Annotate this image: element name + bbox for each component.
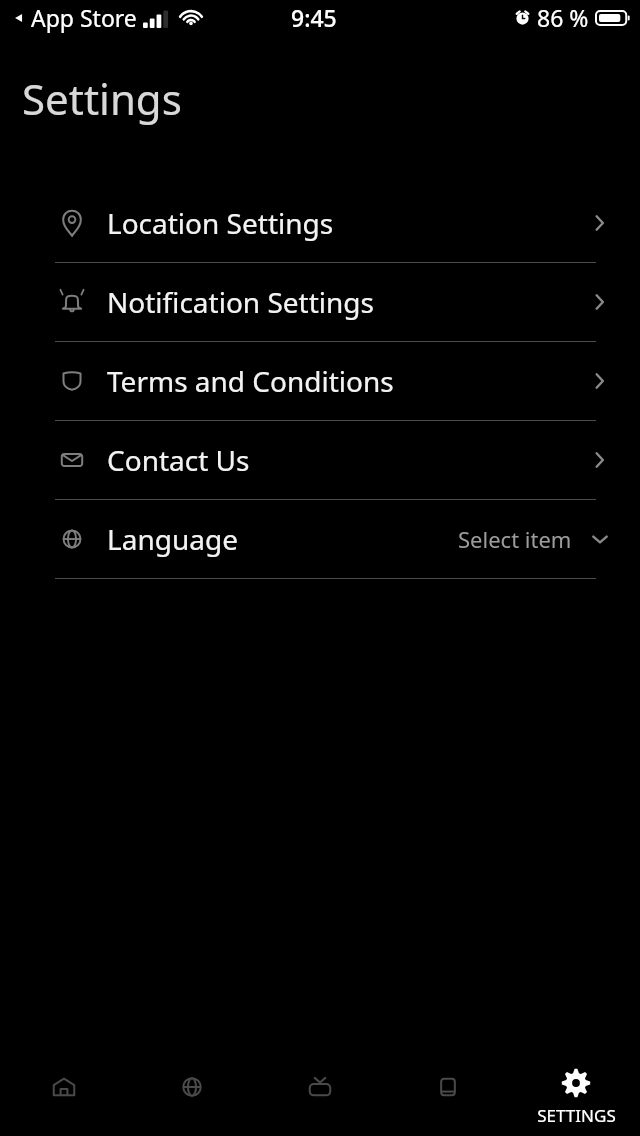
button[interactable]: Notification Settings — [0, 263, 640, 341]
button[interactable]: TV — [256, 1050, 384, 1136]
button[interactable]: Contact Us — [0, 421, 640, 499]
button[interactable]: Home — [0, 1050, 128, 1136]
staticText: Select item — [458, 524, 572, 554]
staticText: 9:45 — [291, 2, 337, 33]
staticText: Settings — [22, 70, 182, 127]
staticText: 86 % — [537, 2, 589, 33]
staticText: Contact Us — [107, 441, 588, 479]
button[interactable]: Browse — [128, 1050, 256, 1136]
button[interactable]: Location Settings — [0, 184, 640, 262]
button[interactable]: Terms and Conditions — [0, 342, 640, 420]
staticText: App Store — [31, 2, 137, 33]
staticText: Language — [107, 520, 458, 558]
staticText: Terms and Conditions — [107, 362, 588, 400]
staticText: Location Settings — [107, 204, 588, 242]
button[interactable]: SETTINGS — [512, 1050, 640, 1136]
button[interactable]: Language — [0, 500, 640, 578]
button[interactable]: Library — [384, 1050, 512, 1136]
staticText: SETTINGS — [537, 1104, 616, 1127]
staticText: Notification Settings — [107, 283, 588, 321]
